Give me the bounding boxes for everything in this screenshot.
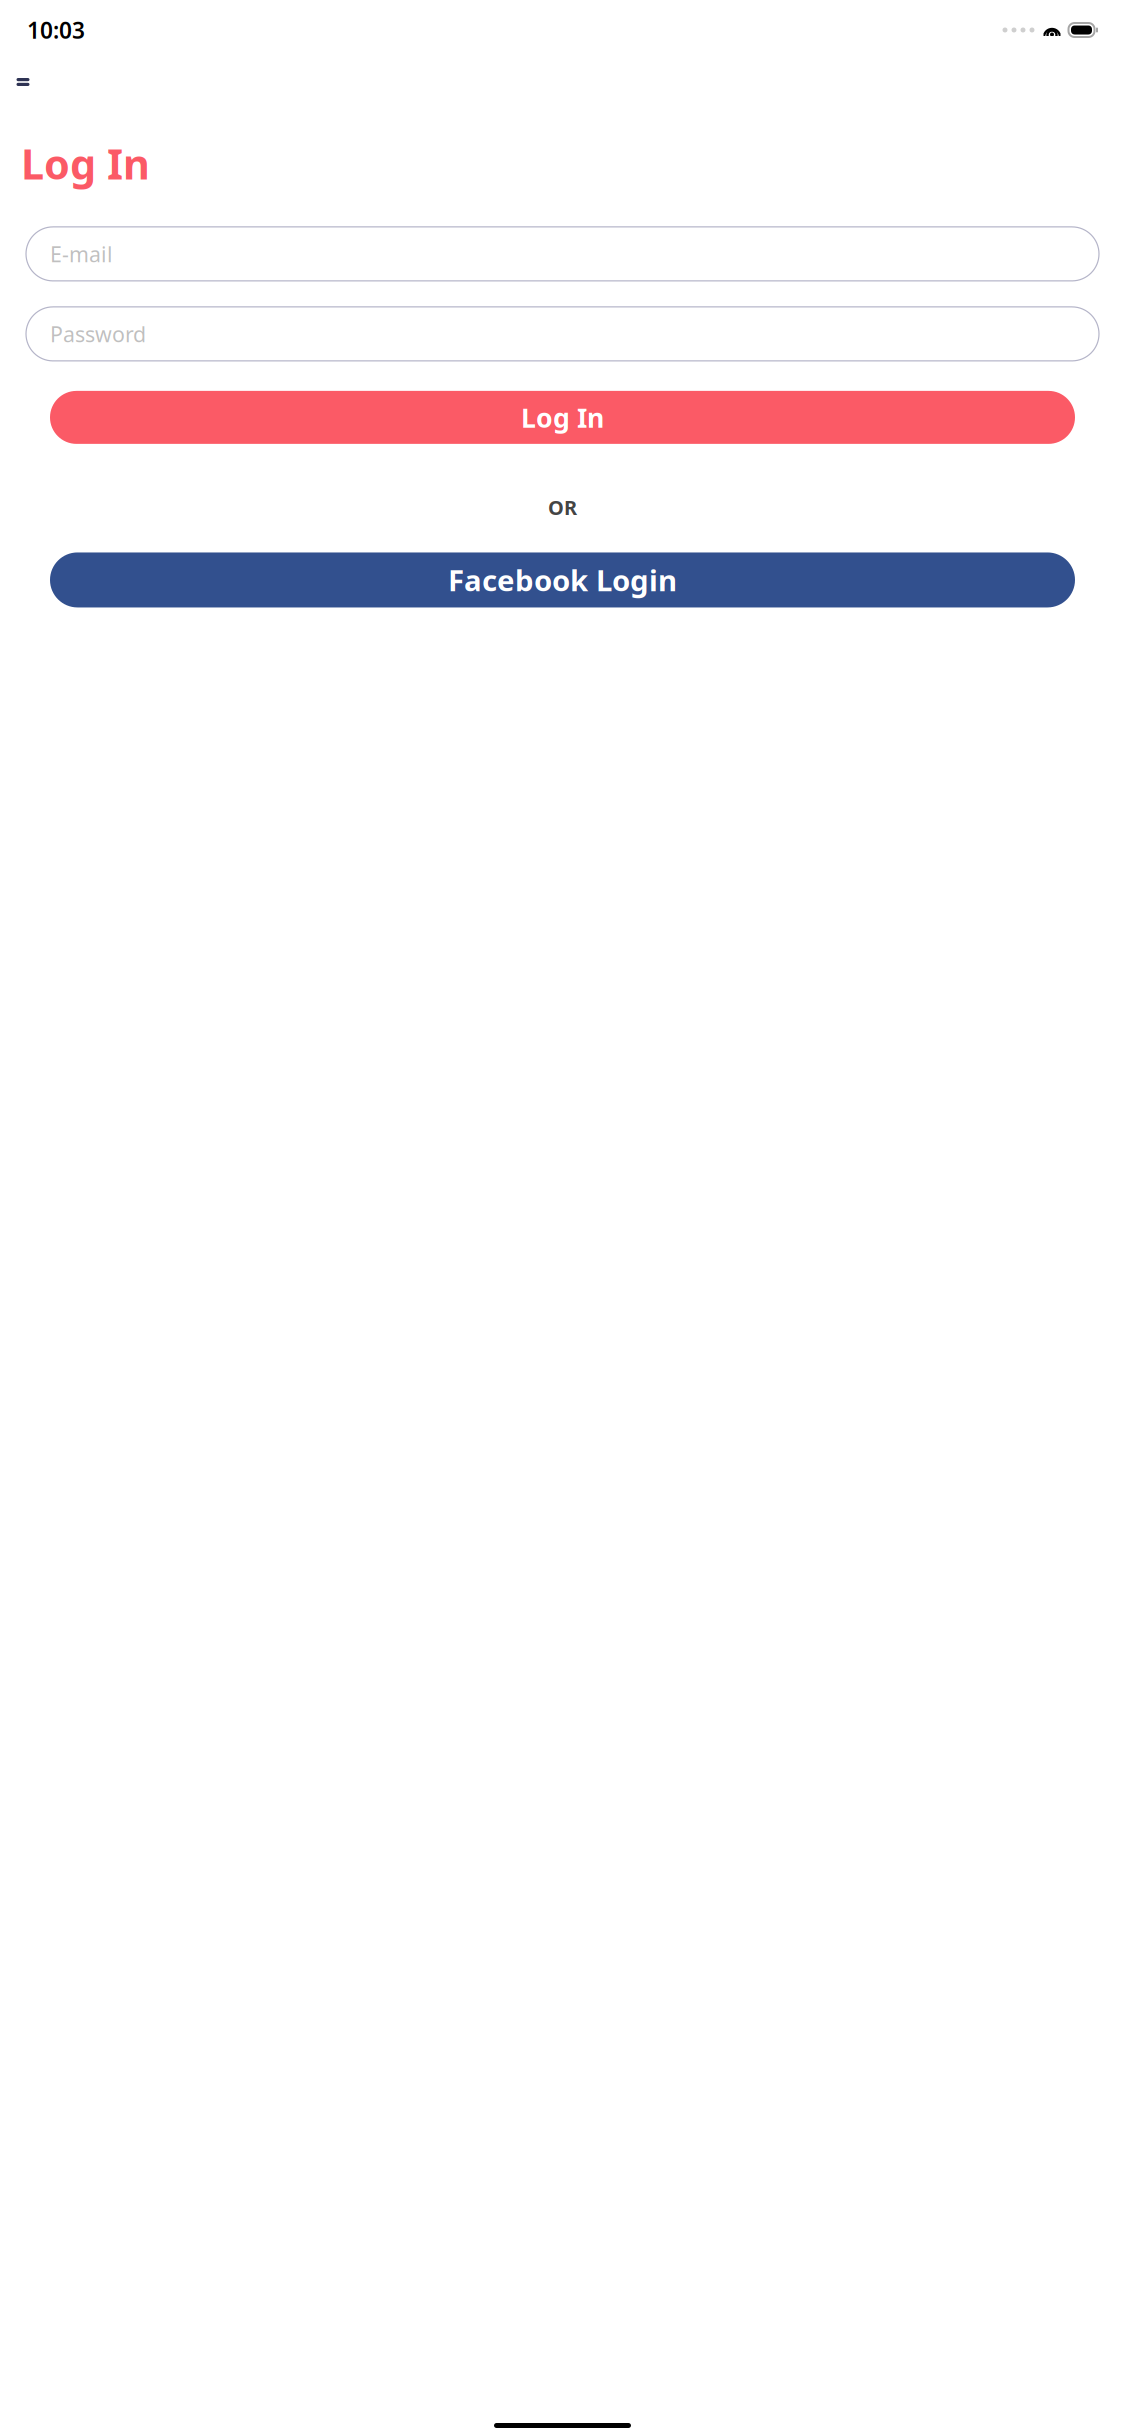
button[interactable]: Log In — [50, 391, 1075, 444]
staticText: Facebook Login — [448, 560, 677, 599]
button[interactable]: Facebook Login — [50, 552, 1075, 607]
staticText: Log In — [21, 136, 150, 191]
button[interactable]: Back — [4, 60, 48, 104]
staticText: E-mail — [50, 240, 113, 268]
staticText: Log In — [521, 400, 604, 435]
button[interactable]: Password — [26, 307, 1099, 361]
staticText: 10:03 — [27, 15, 85, 45]
staticText: OR — [548, 494, 577, 520]
staticText: Password — [50, 320, 146, 348]
button[interactable]: E-mail — [26, 227, 1099, 281]
